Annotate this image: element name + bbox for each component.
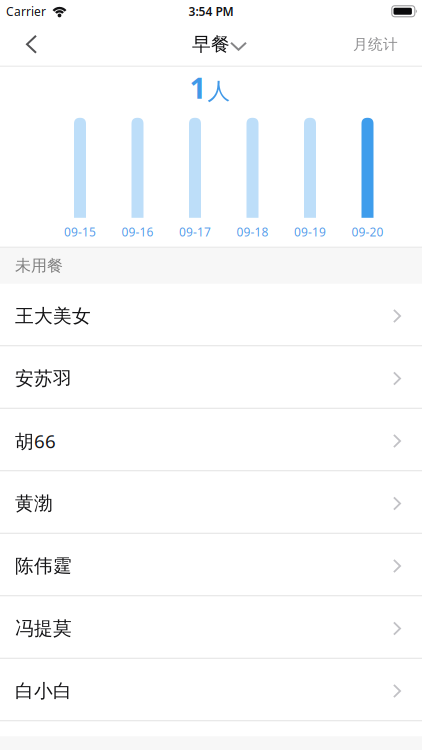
staticText: 陈伟霆	[15, 554, 72, 577]
button[interactable]: 09-15	[64, 118, 96, 240]
button[interactable]: 白小白	[0, 659, 422, 720]
button[interactable]: 陈伟霆	[0, 534, 422, 595]
button[interactable]: 冯提莫	[0, 596, 422, 658]
staticText: Carrier	[6, 3, 46, 19]
button[interactable]: 安苏羽	[0, 346, 422, 408]
button[interactable]: 09-20	[351, 118, 383, 240]
button[interactable]: 黄渤	[0, 471, 422, 533]
staticText: 1	[189, 68, 206, 107]
staticText: 黄渤	[15, 492, 53, 515]
staticText: 月统计	[353, 35, 398, 53]
staticText: 09-19	[294, 224, 326, 240]
staticText: 早餐	[192, 33, 230, 56]
button[interactable]	[0, 35, 49, 54]
staticText: 09-16	[121, 224, 153, 240]
button[interactable]: 胡66	[0, 409, 422, 470]
button[interactable]: 09-16	[121, 118, 153, 240]
button[interactable]: 09-19	[294, 118, 326, 240]
staticText: 白小白	[15, 679, 72, 702]
staticText: 王大美女	[15, 304, 91, 327]
staticText: 09-15	[64, 224, 96, 240]
staticText: 3:54 PM	[188, 3, 233, 19]
button[interactable]: 早餐	[192, 33, 230, 56]
button[interactable]: 09-18	[236, 118, 268, 240]
staticText: 胡66	[15, 429, 56, 453]
button[interactable]: 月统计	[353, 35, 422, 53]
staticText: 09-18	[236, 224, 268, 240]
button[interactable]: 王大美女	[0, 284, 422, 345]
staticText: 人	[207, 77, 230, 105]
staticText: 安苏羽	[15, 367, 72, 390]
staticText: 未用餐	[15, 256, 63, 276]
staticText: 09-17	[179, 224, 211, 240]
button[interactable]: 09-17	[179, 118, 211, 240]
staticText: 09-20	[351, 224, 383, 240]
staticText: 冯提莫	[15, 617, 72, 640]
